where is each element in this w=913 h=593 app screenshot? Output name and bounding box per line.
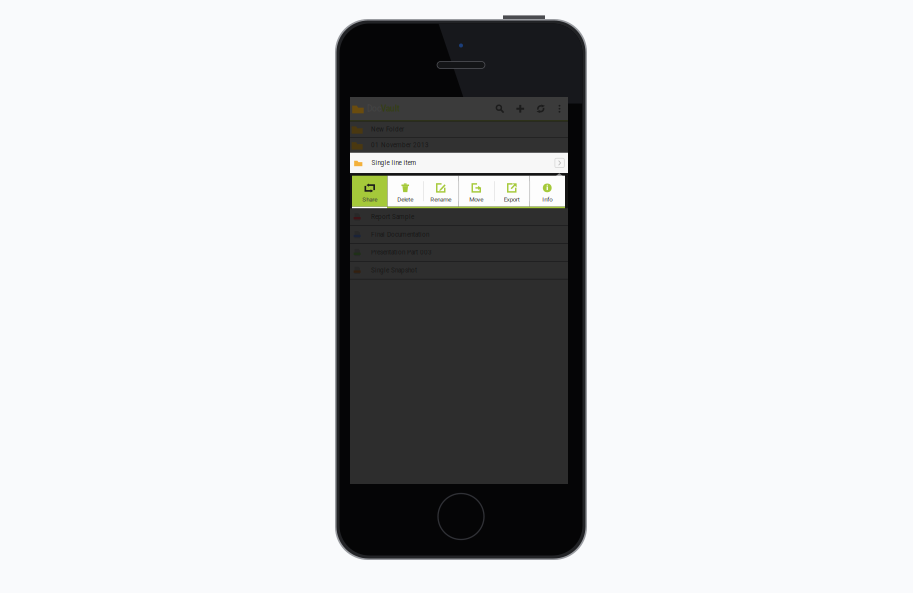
staticText: Delete <box>397 196 413 203</box>
button[interactable]: Delete <box>387 176 423 207</box>
staticText: Vault <box>381 104 400 114</box>
staticText: Single line item <box>372 159 417 167</box>
button[interactable]: More options <box>551 97 568 120</box>
staticText: Share <box>362 196 377 203</box>
button[interactable]: Single line item <box>350 153 568 173</box>
button[interactable]: Export <box>494 176 529 207</box>
staticText: Final Documentation <box>371 231 429 238</box>
button[interactable]: Refresh <box>530 97 551 120</box>
button[interactable]: Rename <box>423 176 458 207</box>
button[interactable]: New Folder <box>350 121 568 137</box>
staticText: Export <box>504 196 520 203</box>
staticText: Single Snapshot <box>371 266 417 274</box>
button[interactable]: Info <box>529 176 565 207</box>
staticText: 01 November 2013 <box>371 141 429 149</box>
button[interactable]: 01 November 2013 <box>350 138 568 153</box>
staticText: Move <box>469 196 483 203</box>
button[interactable]: Move <box>458 176 494 207</box>
button[interactable]: Report Sample <box>350 208 568 225</box>
button[interactable]: Search <box>489 97 510 120</box>
button[interactable]: New item <box>510 97 530 120</box>
button[interactable]: Share <box>352 176 387 207</box>
staticText: Report Sample <box>371 213 414 220</box>
staticText: Presentation Part 003 <box>371 249 432 256</box>
staticText: Rename <box>430 196 451 203</box>
staticText: New Folder <box>371 126 404 133</box>
staticText: Info <box>542 196 552 203</box>
